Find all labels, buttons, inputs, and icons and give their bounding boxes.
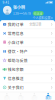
staticText: 张小明 (13, 5, 25, 10)
button[interactable]: 个人资料设置 (0, 16, 55, 20)
staticText: 帮助与反馈 (8, 58, 28, 63)
button[interactable]: 帮助与反馈 (0, 56, 55, 65)
staticText: 我的 (45, 96, 51, 100)
staticText: 全部订单 (29, 22, 41, 27)
staticText: 9:41 (2, 0, 9, 4)
button[interactable]: 关于我们 (0, 83, 55, 92)
button[interactable]: 信息推送 (0, 74, 55, 83)
staticText: 关于我们 (8, 85, 24, 90)
staticText: 信息推送 (8, 76, 24, 81)
staticText: 小店订单 (8, 40, 24, 45)
staticText: 个人资料设置 (33, 16, 51, 20)
staticText: 常用信息 (8, 31, 24, 36)
staticText: 钱包余额 (8, 67, 24, 72)
staticText: 138****5678 (13, 11, 31, 16)
button[interactable]: 我的 (41, 92, 55, 100)
button[interactable]: 钱包余额 (0, 65, 55, 74)
button[interactable]: 常用信息 (0, 29, 55, 38)
staticText: 我的订单 (8, 22, 24, 27)
button[interactable]: 我的订单 (0, 20, 55, 29)
staticText: 已认证 (34, 11, 43, 15)
staticText: 餐饮·特产 (8, 49, 28, 54)
button[interactable]: 小店订单 (0, 38, 55, 47)
button[interactable]: 餐饮·特产 (0, 47, 55, 56)
